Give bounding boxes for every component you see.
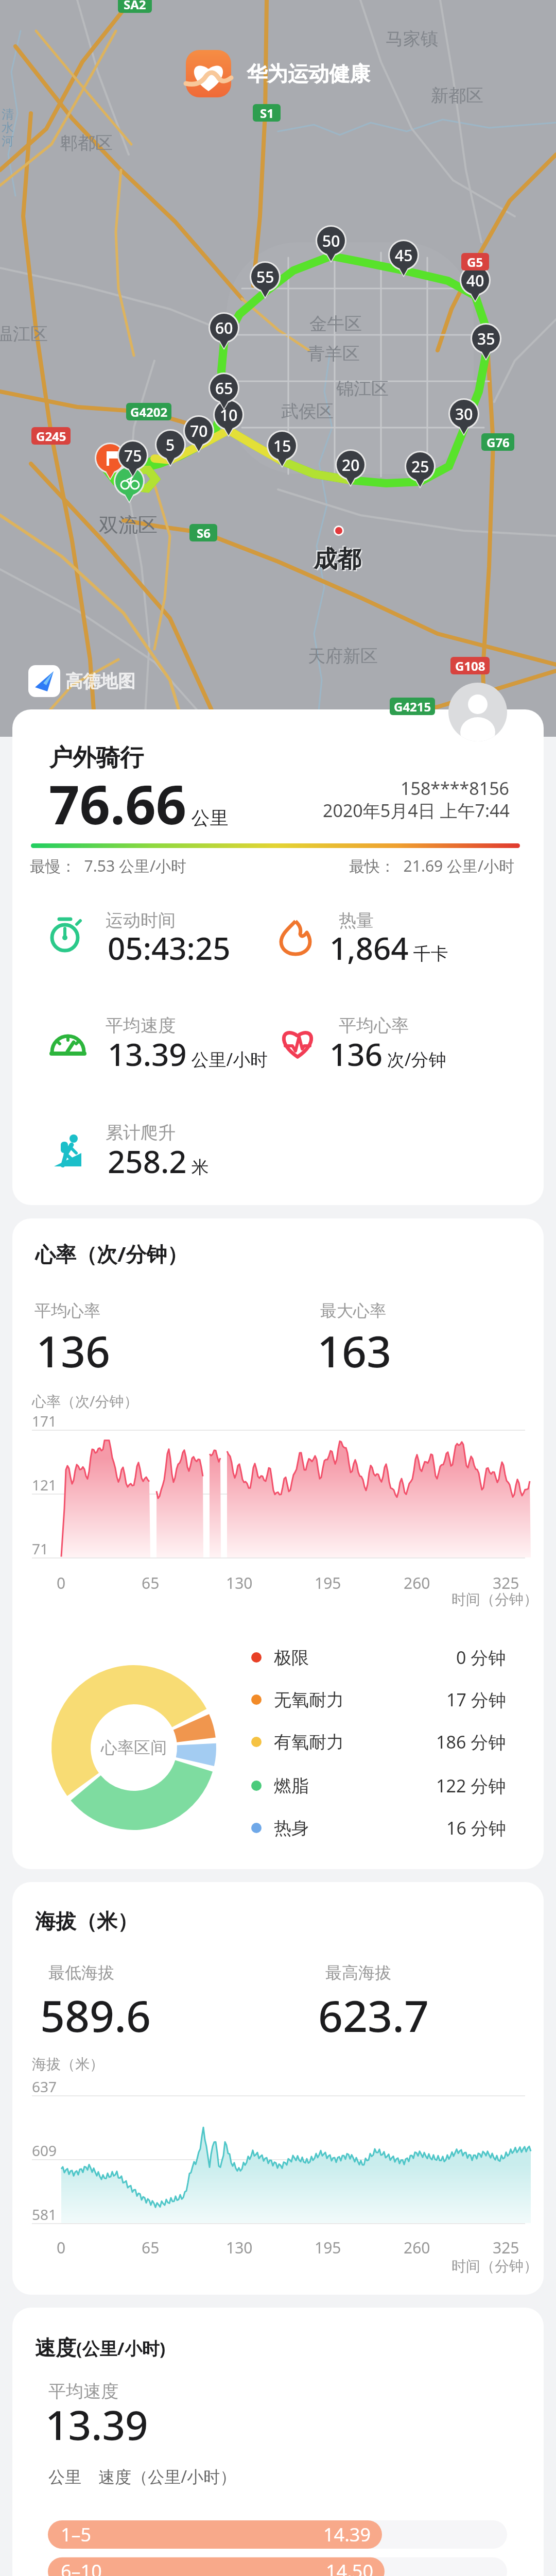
staticText: 心率区间 <box>101 1737 167 1758</box>
staticText: 589.6 <box>40 1986 151 2044</box>
staticText: 最高海拔 <box>325 1962 391 1983</box>
staticText: 最快： 21.69 公里/小时 <box>349 855 515 876</box>
staticText: 户外骑行 <box>49 743 144 773</box>
staticText: 0 <box>57 2237 66 2258</box>
staticText: 新都区 <box>431 84 483 107</box>
staticText: 05:43:25 <box>108 927 231 969</box>
staticText: G5 <box>467 253 483 270</box>
staticText: 260 <box>404 2237 430 2258</box>
staticText: 累计爬升 <box>106 1122 176 1144</box>
staticText: G4202 <box>130 403 168 420</box>
staticText: 平均心率 <box>34 1300 100 1321</box>
staticText: 天府新区 <box>308 645 378 667</box>
staticText: 325 <box>493 1572 519 1594</box>
staticText: 136 <box>36 1321 111 1380</box>
staticText: 13.39 <box>45 2397 148 2452</box>
staticText: 水 <box>2 120 14 135</box>
staticText: 1,864 千卡 <box>329 927 448 969</box>
staticText: 171 <box>32 1411 57 1431</box>
staticText: G245 <box>36 428 66 445</box>
staticText: 极限 <box>274 1647 309 1669</box>
staticText: 马家镇 <box>386 28 438 50</box>
staticText: 16 分钟 <box>446 1816 506 1840</box>
staticText: 122 分钟 <box>436 1774 506 1798</box>
staticText: 双流区 <box>99 513 158 537</box>
staticText: 河 <box>2 133 14 149</box>
staticText: 平均速度 <box>106 1014 176 1037</box>
staticText: 无氧耐力 <box>274 1689 344 1711</box>
staticText: 163 <box>317 1321 392 1380</box>
staticText: 锦江区 <box>336 378 389 400</box>
staticText: 金牛区 <box>309 313 362 335</box>
staticText: 1–5 <box>61 2522 92 2547</box>
staticText: 燃脂 <box>274 1775 309 1797</box>
button[interactable] <box>28 665 136 697</box>
staticText: 15 <box>273 435 291 456</box>
staticText: 325 <box>493 2237 519 2258</box>
staticText: 最慢： 7.53 公里/小时 <box>30 855 187 876</box>
staticText: S6 <box>197 524 211 541</box>
staticText: 成都 <box>312 544 360 573</box>
staticText: 20 <box>342 454 360 476</box>
staticText: 186 分钟 <box>436 1730 506 1754</box>
staticText: 成都 <box>314 545 361 574</box>
staticText: 运动时间 <box>106 909 176 931</box>
staticText: 623.7 <box>318 1986 429 2044</box>
staticText: 平均心率 <box>339 1014 409 1037</box>
staticText: 65 <box>142 1572 160 1594</box>
staticText: 258.2 米 <box>108 1140 209 1182</box>
staticText: 45 <box>395 245 413 266</box>
staticText: G4215 <box>394 698 431 715</box>
staticText: 136 次/分钟 <box>329 1033 446 1075</box>
staticText: 青羊区 <box>307 343 360 365</box>
staticText: 195 <box>315 1572 341 1594</box>
staticText: 速度(公里/小时) <box>35 2335 166 2361</box>
staticText: 海拔（米） <box>32 2055 104 2073</box>
staticText: 2020年5月4日 上午7:44 <box>323 799 510 822</box>
staticText: 581 <box>32 2205 57 2224</box>
staticText: 最大心率 <box>320 1300 386 1321</box>
staticText: G76 <box>486 434 510 451</box>
staticText: 65 <box>215 378 233 399</box>
staticText: 130 <box>226 1572 253 1594</box>
staticText: 华为运动健康 <box>247 61 370 87</box>
staticText: 有氧耐力 <box>274 1731 344 1753</box>
staticText: 65 <box>142 2237 160 2258</box>
button[interactable] <box>448 683 507 741</box>
staticText: 195 <box>315 2237 341 2258</box>
staticText: 6–10 <box>61 2558 102 2576</box>
staticText: 637 <box>32 2077 57 2096</box>
staticText: 热量 <box>339 909 374 931</box>
staticText: 0 分钟 <box>456 1646 506 1669</box>
staticText: 13.39 公里/小时 <box>108 1033 268 1075</box>
staticText: 清 <box>2 107 14 122</box>
staticText: 武侯区 <box>281 400 334 422</box>
staticText: 时间（分钟） <box>451 2257 538 2275</box>
staticText: 260 <box>404 1572 430 1594</box>
staticText: 公里 速度（公里/小时） <box>48 2465 237 2488</box>
staticText: 时间（分钟） <box>451 1590 538 1608</box>
staticText: 平均速度 <box>48 2380 118 2402</box>
staticText: 热身 <box>274 1817 309 1839</box>
staticText: 心率（次/分钟） <box>35 1240 188 1268</box>
staticText: 高德地图 <box>65 670 135 692</box>
button[interactable] <box>179 50 225 96</box>
staticText: 温江区 <box>0 323 48 345</box>
staticText: 55 <box>256 266 274 287</box>
staticText: 25 <box>411 456 429 477</box>
staticText: 158****8156 <box>401 776 510 800</box>
staticText: 14.50 <box>326 2558 374 2576</box>
staticText: 40 <box>466 270 484 291</box>
staticText: SA2 <box>124 0 146 13</box>
staticText: 35 <box>477 328 495 349</box>
staticText: 130 <box>226 2237 253 2258</box>
staticText: 121 <box>32 1475 57 1495</box>
staticText: 71 <box>32 1539 49 1558</box>
staticText: 30 <box>455 403 473 425</box>
staticText: 60 <box>215 317 233 338</box>
staticText: 50 <box>322 230 340 251</box>
staticText: 5 <box>166 434 175 455</box>
staticText: 0 <box>57 1572 66 1594</box>
staticText: 心率（次/分钟） <box>32 1391 138 1411</box>
staticText: 海拔（米） <box>35 1908 138 1934</box>
